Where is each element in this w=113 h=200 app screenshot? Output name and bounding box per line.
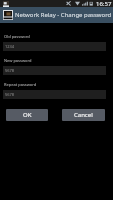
- staticText: 16:57: [96, 0, 112, 7]
- button[interactable]: 5678: [3, 90, 106, 99]
- button[interactable]: Cancel: [62, 109, 105, 121]
- staticText: 1234: [5, 44, 15, 49]
- staticText: 5678: [5, 68, 15, 73]
- button[interactable]: OK: [6, 109, 48, 121]
- other: Network Relay: [3, 10, 13, 20]
- staticText: Repeat password: [4, 82, 37, 87]
- staticText: New password: [4, 58, 32, 63]
- staticText: Cancel: [74, 111, 93, 119]
- staticText: 5678: [5, 92, 15, 97]
- staticText: Old password: [4, 34, 30, 39]
- button[interactable]: 5678: [3, 66, 106, 75]
- button[interactable]: 1234: [3, 42, 106, 51]
- staticText: Network Relay - Change password: [15, 11, 112, 19]
- staticText: OK: [23, 111, 32, 119]
